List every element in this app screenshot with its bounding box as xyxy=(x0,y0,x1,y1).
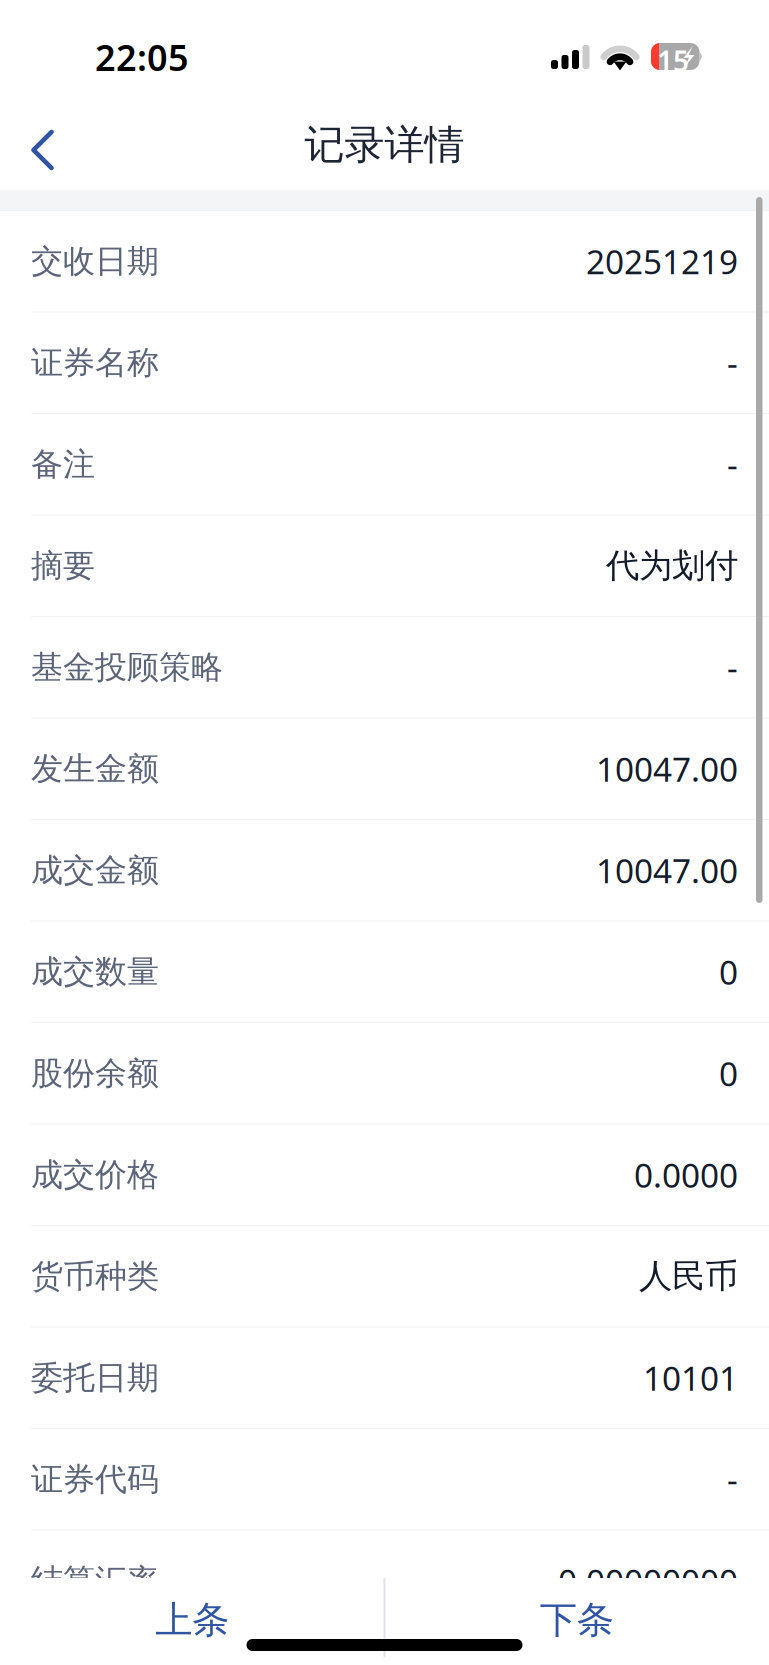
staticText: 代为划付 xyxy=(606,545,738,586)
staticText: 货币种类 xyxy=(31,1257,159,1296)
staticText: 10047.00 xyxy=(596,747,738,791)
staticText: - xyxy=(727,341,738,385)
staticText: 摘要 xyxy=(31,546,95,585)
staticText: 交收日期 xyxy=(31,242,159,281)
staticText: - xyxy=(727,645,738,689)
staticText: 证券名称 xyxy=(31,343,159,382)
button[interactable]: 下条 xyxy=(384,1592,769,1648)
staticText: 基金投顾策略 xyxy=(31,648,223,687)
staticText: 发生金额 xyxy=(31,749,159,788)
staticText: 成交数量 xyxy=(31,952,159,991)
staticText: 15 xyxy=(657,42,689,79)
staticText: 人民币 xyxy=(639,1256,738,1297)
staticText: 0.00000000 xyxy=(558,1559,738,1603)
staticText: 证券代码 xyxy=(31,1460,159,1499)
staticText: - xyxy=(727,442,738,486)
staticText: 10101 xyxy=(643,1356,738,1400)
staticText: 成交价格 xyxy=(31,1155,159,1194)
button[interactable]: 上条 xyxy=(0,1592,384,1648)
staticText: 20251219 xyxy=(586,239,738,283)
staticText: 备注 xyxy=(31,445,95,484)
staticText: 股份余额 xyxy=(31,1054,159,1093)
button[interactable]: Back xyxy=(0,100,79,190)
staticText: 委托日期 xyxy=(31,1358,159,1397)
staticText: 0 xyxy=(719,950,738,994)
staticText: 10047.00 xyxy=(596,848,738,892)
staticText: 22:05 xyxy=(95,33,189,81)
staticText: 0 xyxy=(719,1051,738,1095)
staticText: 成交金额 xyxy=(31,851,159,890)
staticText: 上条 xyxy=(155,1597,229,1643)
staticText: 记录详情 xyxy=(304,120,464,169)
staticText: 结算汇率 xyxy=(31,1561,159,1600)
staticText: 0.0000 xyxy=(634,1153,738,1197)
staticText: - xyxy=(727,1457,738,1501)
staticText: 下条 xyxy=(540,1597,614,1643)
